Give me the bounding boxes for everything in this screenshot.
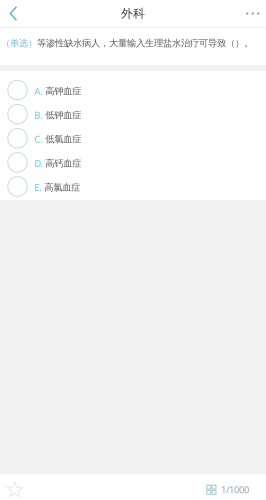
staticText: 等渗性缺水病人，大量输入生理盐水治疗可导致（）。	[37, 37, 253, 49]
staticText: D.	[34, 157, 43, 170]
staticText: 高钾血症	[43, 85, 81, 97]
button[interactable]: E.	[0, 174, 266, 198]
button[interactable]: More options	[235, 0, 266, 27]
staticText: 高钙血症	[43, 158, 81, 169]
button[interactable]: B.	[0, 102, 266, 126]
staticText: 1/1000	[221, 483, 249, 496]
button[interactable]: Favourite	[0, 474, 32, 500]
staticText: 低氯血症	[43, 133, 81, 145]
button[interactable]: D.	[0, 150, 266, 174]
staticText: 高氯血症	[42, 182, 80, 193]
button[interactable]: C.	[0, 126, 266, 150]
staticText: （单选）	[1, 37, 37, 49]
staticText: B.	[34, 109, 43, 121]
staticText: C.	[34, 133, 43, 145]
staticText: 外科	[121, 6, 145, 21]
staticText: A.	[34, 85, 43, 97]
button[interactable]: Back	[0, 0, 28, 27]
staticText: 低钾血症	[43, 109, 81, 121]
button[interactable]: A.	[0, 78, 266, 102]
button[interactable]: Question list, 1 of 1000	[197, 474, 266, 500]
staticText: E.	[34, 181, 42, 194]
